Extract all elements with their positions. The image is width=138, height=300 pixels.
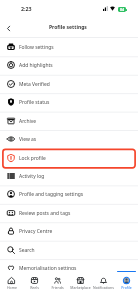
- staticText: Profile and tagging settings: [19, 191, 84, 198]
- button[interactable]: Notifications: [92, 270, 115, 300]
- button[interactable]: Reels: [23, 270, 46, 300]
- staticText: Search: [19, 247, 35, 254]
- button[interactable]: Review posts and tags: [0, 204, 138, 222]
- button[interactable]: Privacy Centre: [0, 222, 138, 240]
- staticText: Profile settings: [49, 24, 87, 31]
- button[interactable]: Activity log: [0, 167, 138, 185]
- button[interactable]: Home: [0, 270, 23, 300]
- staticText: Profile status: [19, 99, 50, 106]
- button[interactable]: Marketplace: [69, 270, 92, 300]
- button[interactable]: Follow settings: [0, 38, 138, 56]
- button[interactable]: Search: [0, 241, 138, 259]
- button[interactable]: Meta Verified: [0, 75, 138, 93]
- staticText: Friends: [51, 285, 64, 290]
- button[interactable]: Memorialisation settings: [0, 259, 138, 277]
- staticText: Archive: [19, 118, 37, 125]
- button[interactable]: View as: [0, 130, 138, 148]
- staticText: Home: [7, 285, 17, 290]
- button[interactable]: Lock profile: [0, 149, 138, 167]
- staticText: Reels: [30, 285, 39, 290]
- button[interactable]: Profile and tagging settings: [0, 185, 138, 203]
- staticText: Marketplace: [70, 285, 91, 290]
- staticText: Follow settings: [19, 44, 54, 51]
- staticText: 2:23: [21, 5, 32, 12]
- staticText: Activity log: [19, 173, 45, 180]
- button[interactable]: Add highlights: [0, 56, 138, 74]
- button[interactable]: Archive: [0, 112, 138, 130]
- staticText: Memorialisation settings: [19, 265, 77, 272]
- button[interactable]: Friends: [46, 270, 69, 300]
- button[interactable]: Profile: [115, 270, 138, 300]
- staticText: Lock profile: [19, 155, 46, 162]
- staticText: Profile: [121, 285, 132, 290]
- staticText: Review posts and tags: [19, 210, 71, 217]
- staticText: Add highlights: [19, 62, 53, 69]
- staticText: 84: [120, 7, 125, 12]
- staticText: Notifications: [93, 285, 114, 290]
- button[interactable]: Profile status: [0, 93, 138, 111]
- staticText: Privacy Centre: [19, 228, 53, 235]
- staticText: View as: [19, 136, 37, 143]
- staticText: Meta Verified: [19, 81, 50, 88]
- button[interactable]: Back: [0, 20, 16, 36]
